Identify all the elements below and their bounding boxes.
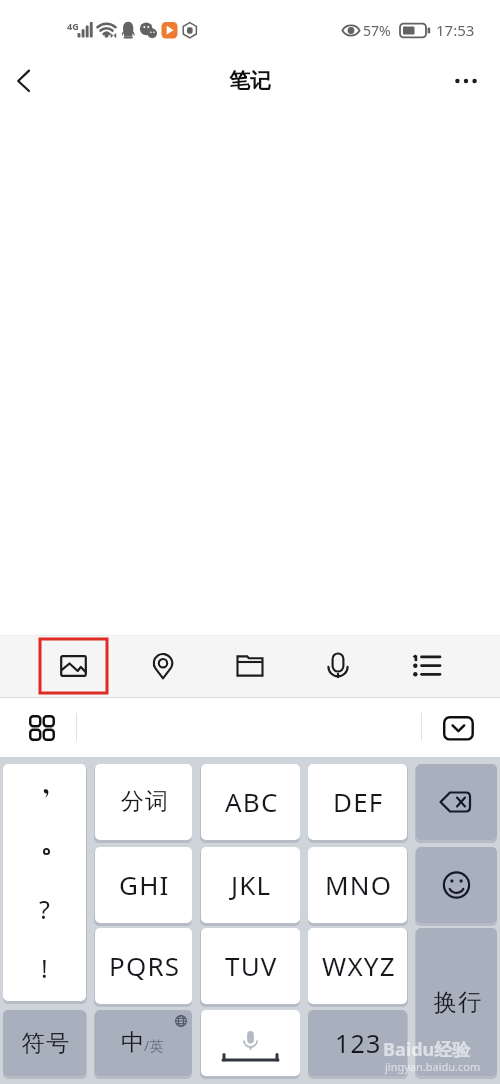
staticText: GHI	[119, 867, 170, 902]
button[interactable]: Emoji	[416, 847, 497, 923]
staticText: ?	[39, 892, 50, 926]
staticText: WXYZ	[322, 948, 396, 983]
button[interactable]: JKL	[201, 847, 300, 923]
staticText: PQRS	[109, 948, 181, 983]
button[interactable]: PQRS	[95, 928, 192, 1004]
staticText: JKL	[231, 867, 272, 902]
button[interactable]: MNO	[308, 847, 407, 923]
button[interactable]: TUV	[201, 928, 300, 1004]
staticText: MNO	[325, 867, 393, 902]
staticText: 符号	[21, 1029, 70, 1058]
staticText: 换行	[433, 988, 482, 1017]
button[interactable]: 123	[308, 1010, 407, 1076]
staticText: 笔记	[229, 68, 271, 94]
staticText: 分词	[120, 787, 169, 816]
staticText: Baidu经验	[383, 1037, 471, 1062]
staticText: 17:53	[436, 20, 475, 40]
button[interactable]: GHI	[95, 847, 192, 923]
button[interactable]: Hide keyboard	[432, 698, 484, 757]
staticText: 中	[121, 1028, 144, 1057]
button[interactable]: Space	[201, 1010, 300, 1076]
staticText: TUV	[225, 948, 278, 983]
button[interactable]: 符号	[3, 1010, 86, 1076]
button[interactable]: Insert image	[40, 639, 107, 693]
button[interactable]: Folder	[223, 639, 277, 693]
button[interactable]: 分词	[95, 764, 192, 840]
staticText: !	[41, 951, 48, 985]
button[interactable]: Voice input	[311, 639, 365, 693]
staticText: /英	[144, 1036, 164, 1055]
staticText: 57%	[363, 21, 391, 40]
button[interactable]: Location	[136, 639, 190, 693]
button[interactable]: Keyboard layouts	[14, 698, 70, 757]
button[interactable]: Back	[0, 55, 48, 110]
button[interactable]: Backspace	[416, 764, 497, 840]
staticText: 4G	[67, 20, 79, 32]
button[interactable]: WXYZ	[308, 928, 407, 1004]
button[interactable]: 换行	[416, 928, 497, 1076]
staticText: DEF	[333, 784, 384, 819]
button[interactable]: DEF	[308, 764, 407, 840]
staticText: ABC	[225, 784, 279, 819]
staticText: 123	[335, 1026, 382, 1060]
button[interactable]: Punctuation	[3, 764, 86, 1001]
button[interactable]: More options	[442, 55, 494, 110]
button[interactable]: Chinese / English	[95, 1010, 192, 1076]
staticText: jingyan.baidu.com	[385, 1059, 481, 1074]
button[interactable]: Ordered list	[399, 639, 453, 693]
button[interactable]: ABC	[201, 764, 300, 840]
